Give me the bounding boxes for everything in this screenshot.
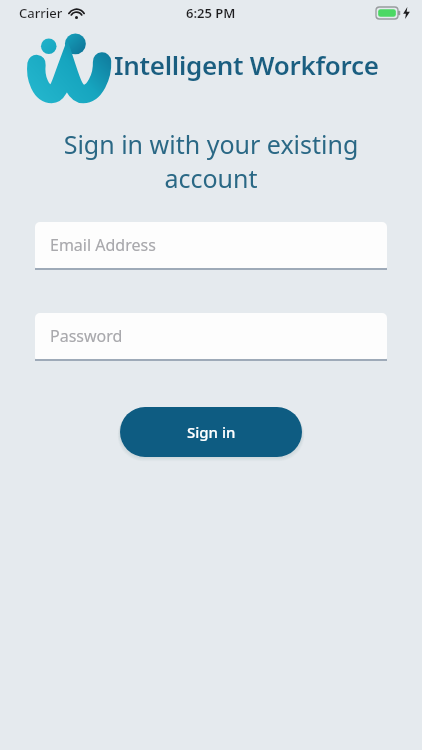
button[interactable]: Email Address [35,222,387,270]
staticText: 6:25 PM [186,4,236,22]
staticText: Password [50,325,123,347]
button[interactable]: Sign in [120,407,302,457]
button[interactable]: Password [35,313,387,361]
staticText: Email Address [50,234,156,256]
staticText: Intelligent Workforce [114,47,379,82]
staticText: Sign in with your existing account [24,127,398,195]
staticText: Carrier [19,4,63,22]
staticText: Sign in [187,422,236,442]
